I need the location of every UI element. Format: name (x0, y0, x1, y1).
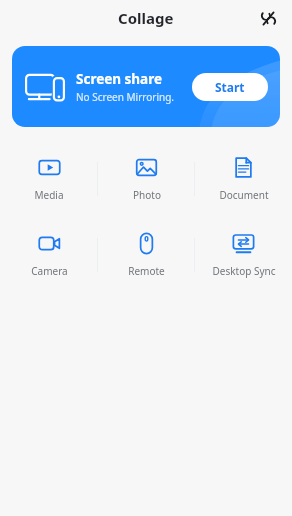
staticText: Screen share (76, 70, 163, 88)
staticText: Remote (128, 264, 165, 278)
staticText: Document (219, 188, 269, 202)
button[interactable]: Disconnect (254, 4, 282, 32)
button[interactable]: Document (195, 147, 292, 211)
button[interactable]: Start (192, 73, 268, 101)
button[interactable]: Photo (98, 147, 195, 211)
button[interactable]: Camera (0, 223, 98, 287)
button[interactable]: Screen share (12, 46, 280, 127)
staticText: Collage (118, 8, 174, 28)
staticText: Desktop Sync (212, 264, 276, 278)
staticText: No Screen Mirroring. (76, 90, 175, 104)
staticText: Camera (31, 264, 68, 278)
staticText: Media (34, 188, 64, 202)
staticText: Start (215, 79, 245, 95)
button[interactable]: Media (0, 147, 98, 211)
button[interactable]: Remote (98, 223, 195, 287)
button[interactable]: Desktop Sync (195, 223, 292, 287)
staticText: Photo (133, 188, 161, 202)
